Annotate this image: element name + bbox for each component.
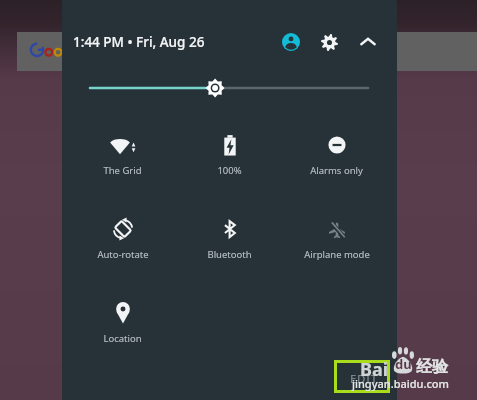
staticText: 1:44 PM • Fri, Aug 26 [73, 33, 205, 51]
staticText: Alarms only [310, 164, 363, 177]
staticText: Airplane mode [304, 248, 370, 261]
button[interactable]: Auto-rotate [69, 208, 176, 292]
staticText: Auto-rotate [97, 248, 149, 261]
staticText: du [395, 355, 412, 373]
staticText: EDIT [350, 371, 378, 387]
button[interactable]: Brightness [90, 76, 368, 100]
button[interactable]: Alarms only [283, 124, 390, 208]
staticText: Bai [360, 357, 389, 382]
staticText: jingyan.baidu.com [352, 376, 449, 391]
button[interactable]: Location [69, 292, 176, 376]
button[interactable]: User account [277, 28, 305, 56]
button[interactable]: Collapse panel [354, 28, 382, 56]
staticText: The Grid [103, 164, 142, 177]
button[interactable]: Airplane mode [283, 208, 390, 292]
button[interactable]: The Grid [69, 124, 176, 208]
button[interactable]: Bluetooth [176, 208, 283, 292]
button[interactable]: Settings [315, 28, 343, 56]
staticText: 经验 [416, 357, 448, 377]
staticText: 100% [217, 164, 242, 177]
staticText: Bluetooth [207, 248, 252, 261]
button[interactable]: EDIT [334, 360, 390, 393]
button[interactable]: 100% [176, 124, 283, 208]
staticText: Location [103, 332, 142, 345]
